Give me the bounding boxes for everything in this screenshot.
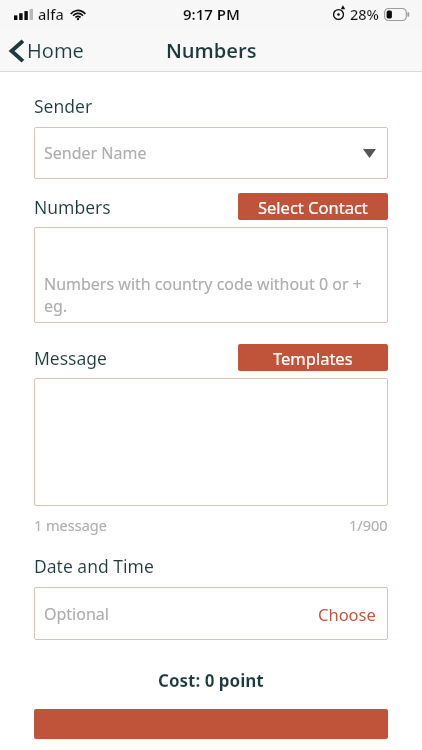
staticText: Numbers bbox=[166, 37, 257, 64]
staticText: Choose bbox=[318, 603, 376, 625]
staticText: Sender Name bbox=[44, 142, 147, 164]
staticText: 1 message bbox=[34, 515, 107, 535]
staticText: Cost: 0 point bbox=[158, 669, 264, 692]
staticText: Templates bbox=[273, 347, 353, 369]
staticText: Numbers bbox=[34, 195, 111, 219]
button[interactable]: Select Contact bbox=[238, 193, 388, 220]
staticText: 1/900 bbox=[349, 515, 388, 535]
staticText: 28% bbox=[350, 4, 379, 24]
staticText: Sender bbox=[34, 94, 93, 118]
staticText: Message bbox=[34, 346, 107, 370]
button[interactable] bbox=[34, 378, 388, 506]
staticText: Numbers with country code without 0 or +… bbox=[44, 273, 384, 317]
button[interactable]: Sender Name bbox=[34, 127, 388, 179]
button[interactable]: Choose bbox=[310, 597, 384, 631]
button[interactable]: Numbers with country code without 0 or +… bbox=[34, 227, 388, 323]
button[interactable]: Home bbox=[0, 31, 96, 70]
staticText: 966512345678,201270698486 bbox=[44, 319, 268, 323]
button[interactable]: Optional bbox=[34, 587, 388, 640]
staticText: alfa bbox=[38, 4, 64, 24]
staticText: Date and Time bbox=[34, 554, 154, 578]
staticText: Optional bbox=[44, 603, 109, 625]
button[interactable]: Templates bbox=[238, 344, 388, 371]
staticText: Home bbox=[27, 37, 84, 64]
staticText: Select Contact bbox=[258, 196, 368, 218]
staticText: 9:17 PM bbox=[183, 4, 240, 24]
